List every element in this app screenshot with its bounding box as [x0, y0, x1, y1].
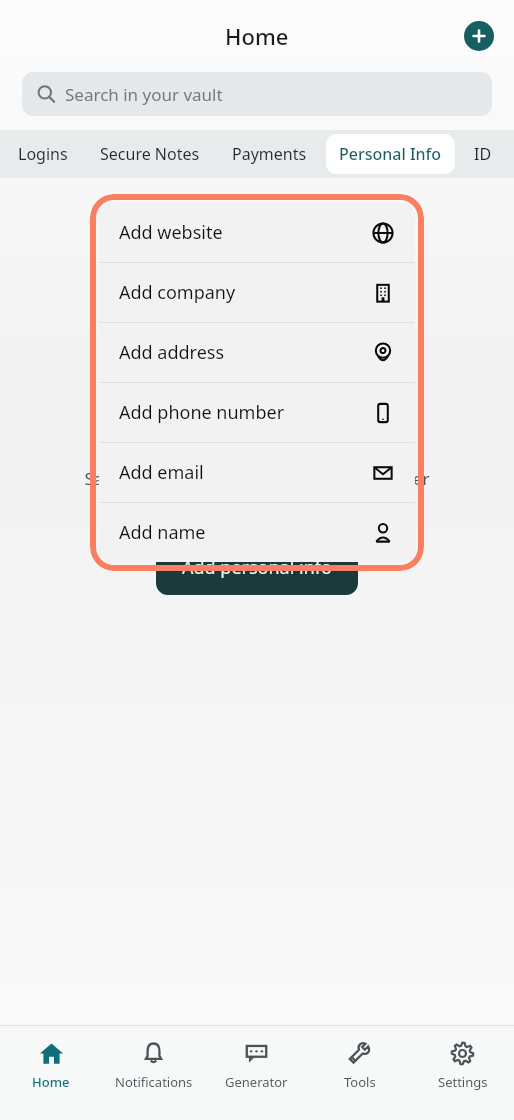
button[interactable]: Add name — [99, 503, 415, 562]
staticText: Logins — [18, 143, 68, 165]
button[interactable]: Add email — [99, 443, 415, 502]
button[interactable]: Add company — [99, 263, 415, 322]
button[interactable]: Secure Notes — [87, 134, 213, 174]
staticText: Add company — [119, 280, 371, 305]
button[interactable]: Settings — [411, 1026, 514, 1120]
button[interactable]: Generator — [205, 1026, 308, 1120]
staticText: Add personal info — [182, 555, 332, 580]
button[interactable]: Tools — [308, 1026, 411, 1120]
staticText: Add phone number — [119, 400, 371, 425]
staticText: Home — [225, 21, 289, 51]
staticText: Settings — [438, 1073, 488, 1091]
staticText: Add address — [119, 340, 371, 365]
staticText: Payments — [232, 143, 307, 165]
staticText: Notifications — [115, 1073, 193, 1091]
button[interactable]: Personal Info — [326, 134, 455, 174]
staticText: IDs — [474, 143, 498, 165]
staticText: Add website — [119, 220, 371, 245]
staticText: Home — [32, 1073, 70, 1091]
button[interactable]: Notifications — [102, 1026, 205, 1120]
staticText: Personal Info — [339, 143, 442, 165]
button[interactable]: Add phone number — [99, 383, 415, 442]
staticText: Tools — [344, 1073, 376, 1091]
button[interactable]: Add item — [464, 21, 494, 51]
staticText: Search in your vault — [65, 83, 223, 106]
staticText: Safely store your personal details for e… — [84, 467, 430, 514]
staticText: Add email — [119, 460, 371, 485]
button[interactable]: Add personal info — [156, 540, 358, 595]
button[interactable]: Add website — [99, 203, 415, 262]
staticText: Generator — [225, 1073, 288, 1091]
button[interactable]: IDs — [461, 134, 511, 174]
button[interactable]: Logins — [5, 134, 81, 174]
button[interactable]: Home — [0, 1026, 102, 1120]
button[interactable]: Payments — [219, 134, 320, 174]
button[interactable]: Search in your vault — [22, 72, 492, 116]
staticText: Store personal information — [121, 428, 393, 457]
staticText: Secure Notes — [100, 143, 200, 165]
staticText: Add name — [119, 520, 371, 545]
button[interactable]: Add address — [99, 323, 415, 382]
